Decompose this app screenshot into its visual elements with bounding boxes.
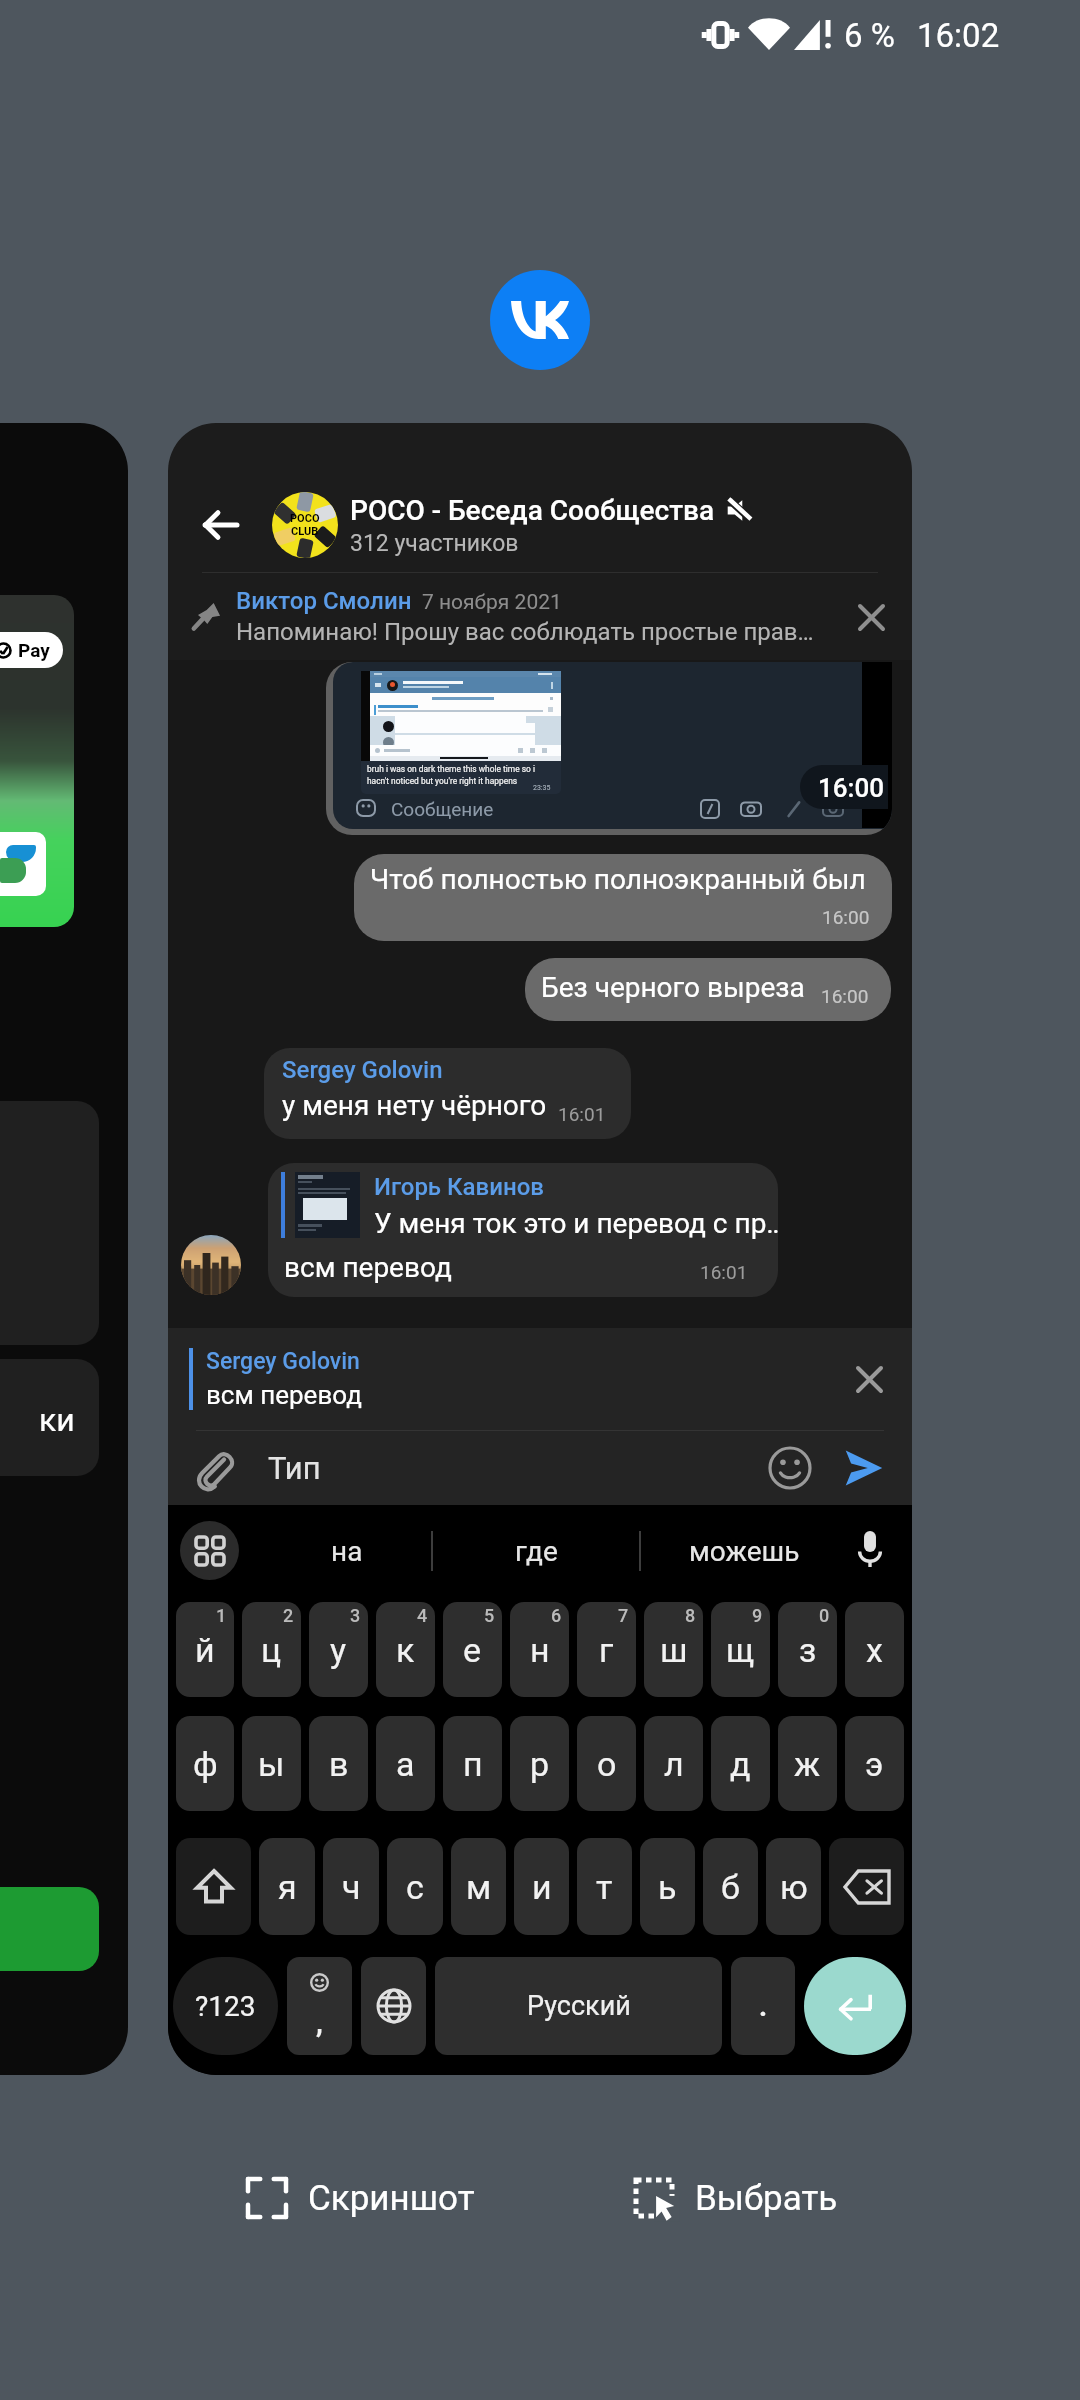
button[interactable]: т [577,1838,632,1935]
button[interactable]: Чтоб полностью полноэкранный был [354,854,892,941]
staticText: 0 [819,1605,830,1626]
button[interactable]: ?123 [173,1957,278,2055]
staticText: с [406,1867,424,1907]
staticText: ь [658,1867,677,1907]
staticText: CLUB [291,525,319,538]
staticText: 6 % [844,16,895,55]
button[interactable]: Emoji [760,1438,820,1498]
button[interactable]: х [845,1602,904,1697]
button[interactable]: . [731,1957,795,2055]
button[interactable]: г [577,1602,636,1697]
button[interactable]: VK [490,270,590,370]
staticText: и [532,1867,552,1907]
staticText: о [597,1744,617,1784]
staticText: б [721,1867,740,1907]
staticText: ф [193,1744,218,1784]
button[interactable]: я [259,1838,315,1935]
button[interactable]: ю [766,1838,821,1935]
staticText: ч [342,1867,361,1907]
button[interactable]: ж [778,1716,837,1811]
staticText: 7 [618,1605,629,1626]
button[interactable]: Keyboard toolbar [180,1521,239,1580]
staticText: 16:02 [917,16,1000,55]
staticText: на [331,1535,363,1568]
staticText: 16:00 [821,985,869,1007]
button[interactable]: э [845,1716,904,1811]
button[interactable]: Back [186,491,254,559]
button[interactable]: Attach [186,1440,242,1496]
staticText: 9 [752,1605,763,1626]
button[interactable]: н [510,1602,569,1697]
button[interactable]: р [510,1716,569,1811]
button[interactable]: з [778,1602,837,1697]
button[interactable]: щ [711,1602,770,1697]
staticText: можешь [689,1535,800,1568]
button[interactable]: й [176,1602,234,1697]
button[interactable]: б [703,1838,758,1935]
staticText: ы [258,1744,285,1784]
staticText: 16:01 [558,1103,606,1125]
staticText: щ [726,1630,755,1670]
button[interactable] [176,1838,251,1935]
staticText: У меня ток это и перевод с пр… [374,1207,778,1240]
button[interactable]: Скриншот [234,2165,487,2231]
staticText: п [463,1744,483,1784]
button[interactable]: п [443,1716,502,1811]
button[interactable]: а [376,1716,435,1811]
staticText: bruh i was on dark theme this whole time… [367,764,535,774]
button[interactable]: Change language [361,1957,426,2055]
button[interactable]: ь [640,1838,695,1935]
button[interactable]: Close pinned [848,594,894,640]
staticText: ц [261,1630,282,1670]
staticText: 2 [283,1605,294,1626]
button[interactable]: Игорь Кавинов [268,1163,778,1297]
button[interactable]: ы [242,1716,301,1811]
button[interactable]: Без черного выреза [525,958,891,1021]
button[interactable]: м [451,1838,506,1935]
button[interactable]: л [644,1716,703,1811]
button[interactable]: Cancel reply [846,1356,892,1402]
button[interactable]: в [309,1716,368,1811]
button[interactable]: можешь [641,1515,847,1587]
button[interactable]: где [433,1515,639,1587]
button[interactable]: к [376,1602,435,1697]
button[interactable]: у [309,1602,368,1697]
button[interactable]: Русский [435,1957,722,2055]
button[interactable]: , [287,1957,352,2055]
staticText: ю [780,1867,808,1907]
staticText: всм перевод [284,1251,452,1284]
button[interactable]: ч [323,1838,379,1935]
button[interactable]: и [514,1838,569,1935]
staticText: Сообщение [391,798,494,820]
staticText: к [396,1630,415,1670]
button[interactable]: Выбрать [621,2165,850,2231]
button[interactable]: Voice input [838,1517,902,1581]
button[interactable]: ф [176,1716,234,1811]
staticText: г [599,1630,614,1670]
button[interactable]: Enter [804,1957,906,2055]
staticText: Игорь Кавинов [374,1173,545,1201]
button[interactable]: д [711,1716,770,1811]
staticText: , [316,2006,323,2039]
staticText: у меня нету чёрного [282,1089,547,1122]
button[interactable]: ш [644,1602,703,1697]
button[interactable]: о [577,1716,636,1811]
button[interactable] [829,1838,904,1935]
button[interactable]: е [443,1602,502,1697]
button[interactable]: Pay [0,423,128,2075]
staticText: Выбрать [695,2178,838,2219]
staticText: Pay [18,639,50,661]
staticText: ш [660,1630,688,1670]
button[interactable]: на [263,1515,431,1587]
button[interactable]: Sergey Golovin [264,1048,631,1139]
button[interactable]: bruh i was on dark theme this whole time… [326,662,892,835]
staticText: д [730,1744,751,1784]
button[interactable]: Send [838,1442,890,1494]
staticText: н [530,1630,550,1670]
staticText: 312 участников [350,530,519,557]
staticText: Sergey Golovin [282,1056,443,1084]
staticText: э [865,1744,884,1784]
button[interactable]: ц [242,1602,301,1697]
staticText: а [396,1744,415,1784]
button[interactable]: с [387,1838,443,1935]
